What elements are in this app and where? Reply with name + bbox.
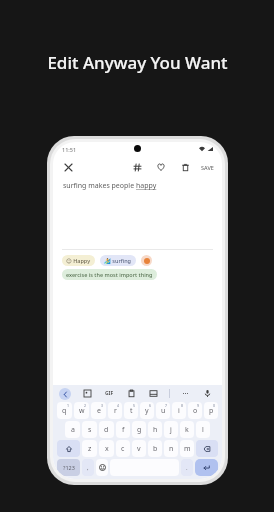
- staticText: 8: [181, 403, 184, 408]
- staticText: 1: [67, 403, 70, 408]
- button[interactable]: q: [57, 402, 72, 419]
- button[interactable]: h: [148, 421, 162, 438]
- staticText: GIF: [105, 390, 114, 397]
- staticText: h: [153, 425, 158, 435]
- button[interactable]: Sticker: [81, 387, 94, 400]
- button[interactable]: x: [99, 440, 114, 457]
- staticText: p: [209, 406, 214, 416]
- staticText: q: [62, 406, 67, 416]
- staticText: e: [97, 406, 101, 416]
- button[interactable]: Enter: [195, 459, 218, 476]
- staticText: ,: [87, 464, 89, 472]
- button[interactable]: Back: [59, 388, 71, 400]
- button[interactable]: a: [65, 421, 80, 438]
- staticText: f: [122, 425, 125, 435]
- button[interactable]: p: [204, 402, 218, 419]
- button[interactable]: SAVE: [201, 160, 214, 174]
- button[interactable]: r: [108, 402, 122, 419]
- staticText: l: [202, 425, 204, 435]
- button[interactable]: Emoji tag: [141, 255, 152, 266]
- button[interactable]: Voice input: [201, 387, 214, 400]
- staticText: 4: [117, 403, 120, 408]
- staticText: t: [130, 406, 133, 416]
- button[interactable]: d: [99, 421, 114, 438]
- staticText: w: [79, 406, 85, 416]
- staticText: 9: [197, 403, 200, 408]
- staticText: ?123: [63, 464, 75, 471]
- button[interactable]: Theme: [147, 387, 160, 400]
- staticText: j: [170, 425, 172, 435]
- staticText: v: [137, 444, 141, 454]
- staticText: 11:51: [62, 146, 77, 153]
- staticText: surfing makes people: [63, 181, 136, 191]
- staticText: s: [88, 425, 92, 435]
- staticText: x: [105, 444, 109, 454]
- button[interactable]: Tag: [130, 160, 144, 174]
- staticText: 5: [133, 403, 136, 408]
- staticText: 7: [165, 403, 168, 408]
- button[interactable]: b: [148, 440, 162, 457]
- button[interactable]: k: [180, 421, 194, 438]
- button[interactable]: t: [124, 402, 138, 419]
- button[interactable]: Close: [61, 160, 75, 174]
- button[interactable]: 😊 Happy: [62, 255, 95, 266]
- button[interactable]: l: [196, 421, 210, 438]
- button[interactable]: Shift: [57, 440, 80, 457]
- staticText: k: [185, 425, 189, 435]
- button[interactable]: n: [164, 440, 178, 457]
- staticText: exercise is the most import thing: [66, 271, 153, 278]
- button[interactable]: m: [180, 440, 194, 457]
- button[interactable]: Favorite: [154, 160, 168, 174]
- button[interactable]: Delete: [178, 160, 192, 174]
- staticText: a: [71, 425, 75, 435]
- button[interactable]: i: [172, 402, 186, 419]
- staticText: SAVE: [201, 164, 214, 171]
- staticText: z: [88, 444, 92, 454]
- button[interactable]: f: [116, 421, 130, 438]
- button[interactable]: g: [132, 421, 146, 438]
- staticText: 3: [101, 403, 104, 408]
- button[interactable]: z: [82, 440, 97, 457]
- button[interactable]: GIF: [103, 387, 116, 400]
- staticText: 🏄 surfing: [104, 257, 132, 264]
- staticText: 2: [84, 403, 87, 408]
- button[interactable]: u: [156, 402, 170, 419]
- staticText: 😊 Happy: [66, 257, 91, 264]
- staticText: g: [137, 425, 142, 435]
- staticText: i: [178, 406, 180, 416]
- button[interactable]: 🏄 surfing: [100, 255, 136, 266]
- button[interactable]: c: [116, 440, 130, 457]
- button[interactable]: o: [188, 402, 202, 419]
- button[interactable]: ?123: [57, 459, 80, 476]
- staticText: .: [186, 464, 188, 472]
- staticText: m: [184, 444, 191, 454]
- staticText: u: [161, 406, 166, 416]
- staticText: b: [153, 444, 158, 454]
- staticText: o: [193, 406, 198, 416]
- staticText: c: [121, 444, 125, 454]
- staticText: d: [104, 425, 109, 435]
- staticText: 0: [213, 403, 216, 408]
- button[interactable]: e: [91, 402, 106, 419]
- button[interactable]: w: [74, 402, 89, 419]
- staticText: y: [145, 406, 149, 416]
- button[interactable]: Clipboard: [125, 387, 138, 400]
- staticText: r: [114, 406, 117, 416]
- staticText: n: [169, 444, 174, 454]
- staticText: happy: [136, 181, 157, 191]
- staticText: Edit Anyway You Want: [47, 51, 228, 74]
- button[interactable]: Backspace: [196, 440, 218, 457]
- button[interactable]: exercise is the most import thing: [62, 269, 157, 280]
- button[interactable]: More: [179, 387, 192, 400]
- button[interactable]: Emoji: [96, 459, 108, 476]
- button[interactable]: v: [132, 440, 146, 457]
- staticText: 6: [149, 403, 152, 408]
- button[interactable]: .: [181, 459, 193, 476]
- button[interactable]: s: [82, 421, 97, 438]
- button[interactable]: j: [164, 421, 178, 438]
- button[interactable]: ,: [82, 459, 94, 476]
- button[interactable]: y: [140, 402, 154, 419]
